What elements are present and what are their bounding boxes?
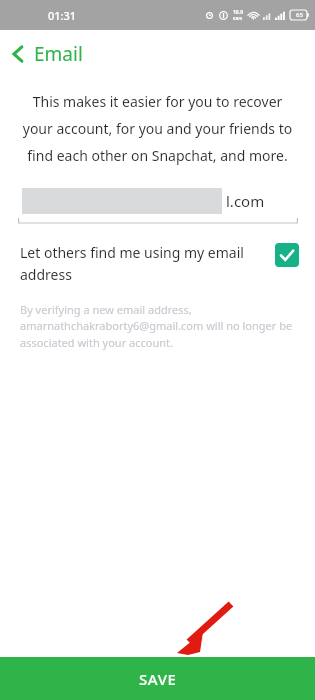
staticText: 10.0 xyxy=(233,9,243,16)
staticText: l.com xyxy=(226,191,265,211)
other: Let others find me using my email addres… xyxy=(275,243,299,267)
button[interactable]: SAVE xyxy=(0,657,315,700)
staticText: KB/S xyxy=(233,16,243,21)
staticText: This makes it easier for you to recover … xyxy=(20,92,295,165)
button[interactable]: l.com xyxy=(0,187,315,229)
staticText: By verifying a new email address, amarna… xyxy=(20,302,293,351)
staticText: Email xyxy=(34,41,83,67)
staticText: 65 xyxy=(296,11,303,19)
button[interactable]: Back xyxy=(0,30,315,78)
staticText: Let others find me using my email addres… xyxy=(20,243,265,284)
button[interactable]: Let others find me using my email addres… xyxy=(0,239,315,288)
staticText: 01:31 xyxy=(48,8,77,23)
staticText: SAVE xyxy=(139,669,177,689)
